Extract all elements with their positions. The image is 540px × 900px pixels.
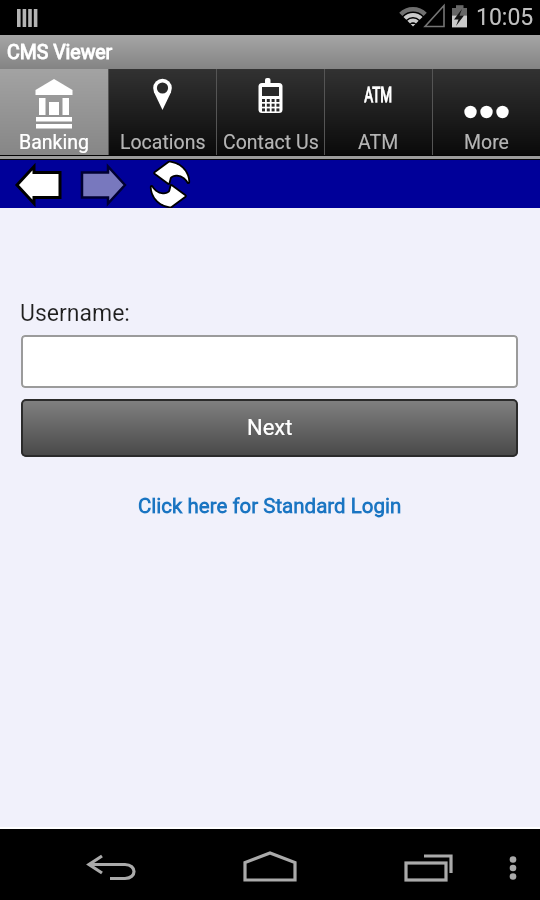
- staticText: ATM: [364, 83, 393, 107]
- button[interactable]: [21, 335, 518, 388]
- button[interactable]: Home: [225, 829, 315, 900]
- staticText: Contact Us: [223, 131, 319, 154]
- staticText: Banking: [19, 131, 89, 154]
- button[interactable]: Back: [14, 160, 66, 208]
- staticText: Next: [247, 415, 293, 441]
- staticText: 10:05: [476, 4, 534, 31]
- staticText: More: [464, 131, 509, 154]
- button[interactable]: Banking: [0, 69, 108, 155]
- button[interactable]: Next: [21, 399, 518, 457]
- button[interactable]: Locations: [109, 69, 216, 155]
- button[interactable]: Back: [67, 829, 157, 900]
- button[interactable]: ATM: [325, 69, 432, 155]
- staticText: Username:: [20, 300, 130, 327]
- button[interactable]: Refresh: [146, 160, 194, 208]
- staticText: CMS Viewer: [7, 41, 113, 64]
- button[interactable]: Contact Us: [217, 69, 324, 155]
- button[interactable]: Click here for Standard Login: [138, 494, 402, 518]
- staticText: Locations: [120, 131, 206, 154]
- button[interactable]: More: [433, 69, 540, 155]
- button[interactable]: Recent apps: [383, 829, 473, 900]
- button[interactable]: Forward: [79, 160, 131, 208]
- button[interactable]: More options: [488, 829, 538, 900]
- staticText: ATM: [358, 131, 399, 154]
